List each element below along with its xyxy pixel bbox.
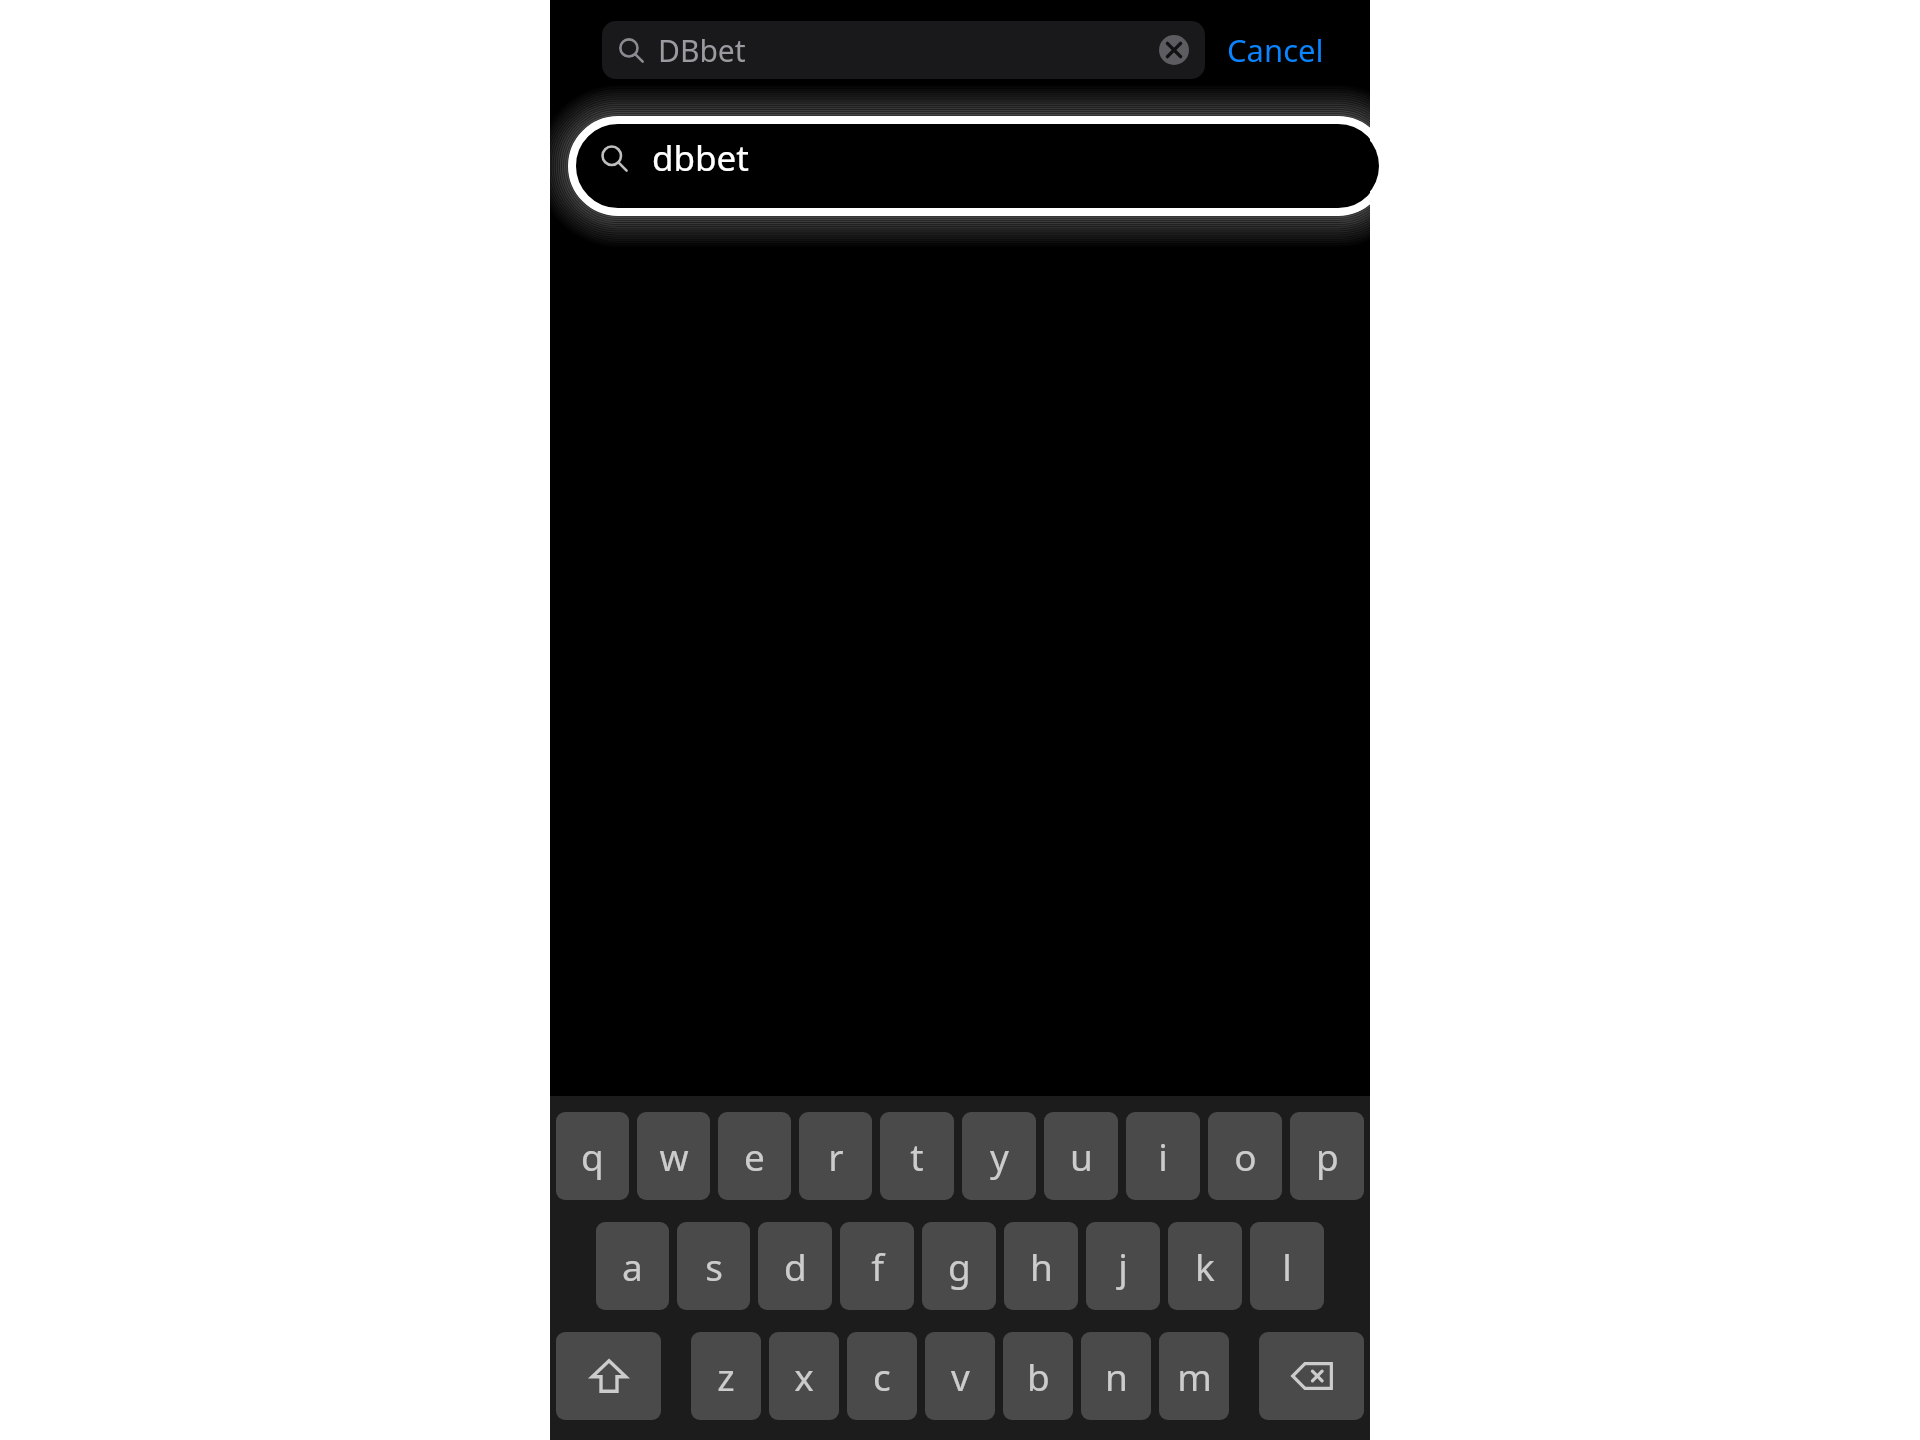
button[interactable]: Shift bbox=[556, 1332, 661, 1420]
button[interactable]: q bbox=[556, 1112, 629, 1200]
staticText: n bbox=[1105, 1351, 1128, 1401]
staticText: u bbox=[1070, 1131, 1093, 1181]
staticText: dbbet bbox=[652, 134, 749, 182]
button[interactable]: a bbox=[596, 1222, 669, 1310]
staticText: s bbox=[705, 1241, 723, 1291]
staticText: f bbox=[871, 1241, 884, 1291]
button[interactable]: y bbox=[962, 1112, 1036, 1200]
staticText: c bbox=[873, 1351, 891, 1401]
staticText: b bbox=[1027, 1351, 1050, 1401]
staticText: y bbox=[990, 1131, 1009, 1181]
button[interactable]: i bbox=[1126, 1112, 1200, 1200]
staticText: a bbox=[622, 1241, 643, 1291]
staticText: Cancel bbox=[1227, 29, 1324, 71]
button[interactable]: x bbox=[769, 1332, 839, 1420]
staticText: z bbox=[717, 1351, 735, 1401]
staticText: m bbox=[1177, 1351, 1212, 1401]
button[interactable]: c bbox=[847, 1332, 917, 1420]
button[interactable]: f bbox=[840, 1222, 914, 1310]
staticText: j bbox=[1118, 1241, 1128, 1291]
button[interactable]: d bbox=[758, 1222, 832, 1310]
button[interactable]: m bbox=[1159, 1332, 1229, 1420]
staticText: q bbox=[581, 1131, 604, 1181]
button[interactable]: s bbox=[677, 1222, 750, 1310]
staticText: DBbet bbox=[658, 30, 746, 71]
button[interactable]: j bbox=[1086, 1222, 1160, 1310]
button[interactable]: t bbox=[880, 1112, 954, 1200]
staticText: d bbox=[784, 1241, 807, 1291]
staticText: v bbox=[951, 1351, 970, 1401]
button[interactable]: r bbox=[799, 1112, 872, 1200]
button[interactable]: e bbox=[718, 1112, 791, 1200]
staticText: h bbox=[1030, 1241, 1053, 1291]
staticText: p bbox=[1316, 1131, 1339, 1181]
button[interactable]: Cancel bbox=[1223, 19, 1328, 81]
staticText: k bbox=[1195, 1241, 1215, 1291]
button[interactable]: l bbox=[1250, 1222, 1324, 1310]
staticText: i bbox=[1158, 1131, 1168, 1181]
button[interactable]: z bbox=[691, 1332, 761, 1420]
staticText: x bbox=[794, 1351, 814, 1401]
button[interactable]: n bbox=[1081, 1332, 1151, 1420]
button[interactable]: h bbox=[1004, 1222, 1078, 1310]
button[interactable]: o bbox=[1208, 1112, 1282, 1200]
staticText: t bbox=[910, 1131, 924, 1181]
button[interactable]: dbbet bbox=[600, 108, 1340, 208]
button[interactable]: v bbox=[925, 1332, 995, 1420]
button[interactable]: k bbox=[1168, 1222, 1242, 1310]
button[interactable]: w bbox=[637, 1112, 710, 1200]
button[interactable]: u bbox=[1044, 1112, 1118, 1200]
staticText: g bbox=[948, 1241, 971, 1291]
button[interactable]: Backspace bbox=[1259, 1332, 1364, 1420]
button[interactable]: g bbox=[922, 1222, 996, 1310]
button[interactable]: b bbox=[1003, 1332, 1073, 1420]
staticText: l bbox=[1282, 1241, 1292, 1291]
button[interactable]: Clear text bbox=[1157, 33, 1191, 67]
staticText: o bbox=[1234, 1131, 1257, 1181]
button[interactable]: p bbox=[1290, 1112, 1364, 1200]
staticText: e bbox=[744, 1131, 765, 1181]
staticText: r bbox=[828, 1131, 844, 1181]
button[interactable]: DBbet bbox=[602, 21, 1205, 79]
staticText: w bbox=[659, 1131, 689, 1181]
